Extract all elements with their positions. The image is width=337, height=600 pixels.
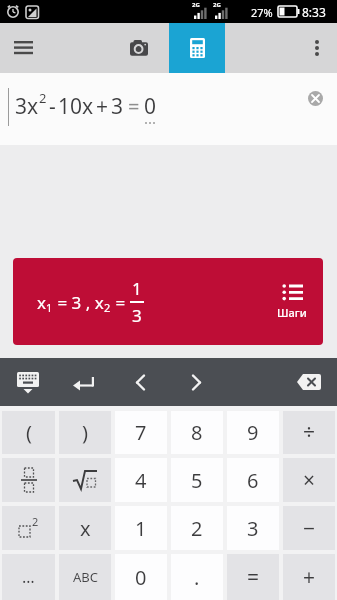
button[interactable] [56,358,112,406]
button[interactable] [59,458,111,502]
button[interactable]: x [59,506,111,550]
button[interactable]: 7 [115,411,167,454]
staticText: x [80,515,91,542]
button[interactable] [308,91,323,106]
staticText: 1 [132,277,142,300]
button[interactable]: = [227,554,279,600]
staticText: 2G [192,1,200,9]
button[interactable]: 0 [115,554,167,600]
staticText: + [96,92,109,121]
button[interactable]: ( [2,411,55,454]
staticText: 7 [135,419,147,446]
staticText: + [303,563,316,592]
button[interactable]: − [283,506,335,550]
button[interactable]: . [171,554,223,600]
button[interactable] [111,23,167,73]
staticText: ( [26,419,32,446]
staticText: . [194,564,200,591]
staticText: x [37,291,46,314]
staticText: ÷ [303,418,316,447]
staticText: 8:33 [302,4,326,20]
button[interactable]: ) [59,411,111,454]
staticText: − [303,514,316,543]
button[interactable] [281,358,337,406]
staticText: = [128,93,140,120]
button[interactable] [112,358,168,406]
staticText: 27% [251,5,273,20]
button[interactable] [0,358,56,406]
staticText: 1 [135,515,147,542]
button[interactable]: 3 [227,506,279,550]
staticText: 2 [191,515,203,542]
staticText: 9 [247,419,259,446]
staticText: × [303,466,316,495]
staticText: 5 [191,467,203,494]
button[interactable] [0,23,48,73]
button[interactable]: + [283,554,335,600]
staticText: 3 [132,304,142,327]
staticText: 2 [39,89,47,107]
staticText: = 3 , x [53,291,104,314]
button[interactable] [297,23,337,73]
staticText: 4 [135,467,147,494]
staticText: 2 [104,300,111,315]
button[interactable]: 4 [115,458,167,502]
staticText: Шаги [277,305,307,320]
staticText: 3 [111,92,124,121]
staticText: 3x [15,92,39,121]
staticText: - [49,92,56,121]
button[interactable] [2,458,55,502]
button[interactable]: 8 [171,411,223,454]
button[interactable]: × [283,458,335,502]
staticText: … [22,566,35,588]
staticText: ABC [73,568,98,586]
staticText: 8 [191,419,203,446]
button[interactable] [169,23,225,73]
button[interactable]: x [13,258,323,345]
staticText: = [111,291,130,314]
staticText: ) [82,419,88,446]
button[interactable]: 1 [115,506,167,550]
button[interactable]: 9 [227,411,279,454]
staticText: 0 [135,564,147,591]
staticText: = [247,563,260,592]
staticText: 0 [144,92,157,121]
button[interactable]: 2 [171,506,223,550]
button[interactable]: … [2,554,55,600]
staticText: 3 [247,515,259,542]
button[interactable]: ABC [59,554,111,600]
button[interactable]: 5 [171,458,223,502]
staticText: 2G [213,1,221,9]
staticText: 6 [247,467,259,494]
button[interactable]: 2 [2,506,55,550]
staticText: 1 [46,300,53,315]
staticText: 10x [58,92,94,121]
button[interactable] [168,358,224,406]
button[interactable]: ÷ [283,411,335,454]
button[interactable]: 6 [227,458,279,502]
staticText: 2 [32,514,39,529]
